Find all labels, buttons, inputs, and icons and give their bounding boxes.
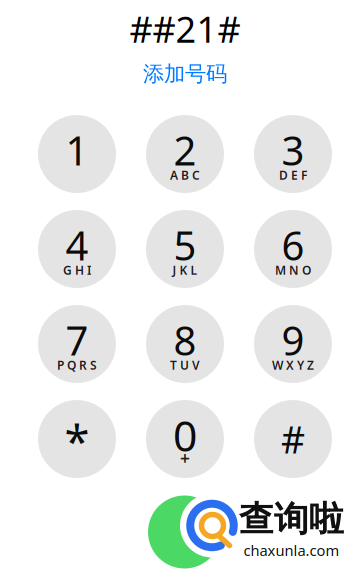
staticText: 8 — [173, 313, 196, 367]
button[interactable]: 7 PQRS — [38, 305, 116, 383]
staticText: 查询啦 — [239, 498, 344, 541]
staticText: G H I — [63, 262, 91, 278]
staticText: J K L — [172, 262, 197, 278]
button[interactable]: 6 MNO — [254, 210, 332, 288]
staticText: 0 — [173, 407, 197, 463]
staticText: 5 — [173, 218, 196, 272]
staticText: D E F — [279, 167, 307, 183]
button[interactable]: 2 ABC — [146, 115, 224, 193]
staticText: 7 — [65, 313, 88, 367]
staticText: 4 — [65, 218, 88, 272]
staticText: 添加号码 — [143, 61, 227, 87]
button[interactable]: 0 plus — [146, 400, 224, 478]
staticText: P Q R S — [57, 357, 97, 373]
staticText: + — [180, 446, 190, 469]
staticText: T U V — [170, 357, 200, 373]
staticText: 9 — [281, 313, 304, 367]
staticText: 1 — [65, 123, 88, 177]
staticText: A B C — [170, 167, 200, 183]
button[interactable]: Star — [38, 400, 116, 478]
button[interactable]: 4 GHI — [38, 210, 116, 288]
staticText: 3 — [281, 123, 304, 177]
staticText: 6 — [281, 218, 304, 272]
button[interactable]: 3 DEF — [254, 115, 332, 193]
staticText: ##21# — [129, 5, 240, 53]
staticText: chaxunla.com — [243, 541, 339, 560]
button[interactable]: 9 WXYZ — [254, 305, 332, 383]
staticText: # — [281, 414, 305, 464]
staticText: 2 — [173, 123, 196, 177]
staticText: W X Y Z — [272, 357, 314, 373]
button[interactable]: 1 — [38, 115, 116, 193]
button[interactable]: 添加号码 — [143, 61, 227, 87]
button[interactable]: 8 TUV — [146, 305, 224, 383]
button[interactable]: Pound — [254, 400, 332, 478]
staticText: * — [64, 411, 89, 471]
button[interactable]: 5 JKL — [146, 210, 224, 288]
staticText: M N O — [275, 262, 311, 278]
